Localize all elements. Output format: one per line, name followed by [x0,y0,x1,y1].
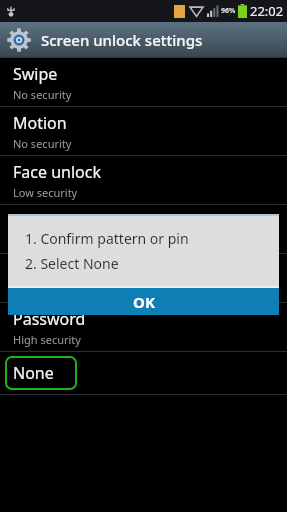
staticText: Face unlock [13,161,101,183]
staticText: Signature [13,210,86,232]
staticText: Password [13,308,86,330]
staticText: High security [13,332,81,347]
staticText: None [13,362,54,384]
staticText: No security [13,87,72,102]
staticText: Low security [13,234,78,249]
staticText: Screen unlock settings [41,30,203,50]
staticText: Low security [13,185,78,200]
staticText: 1. Confirm pattern or pin [25,229,189,248]
staticText: 22:02 [250,2,284,20]
staticText: Motion [13,112,67,134]
staticText: Swipe [13,63,58,85]
staticText: PIN [13,259,41,281]
button[interactable]: Signature [0,205,287,253]
button[interactable]: PIN [0,254,287,302]
staticText: Medium to high security [13,283,139,298]
staticText: OK [133,292,155,312]
button[interactable]: OK [8,288,279,315]
button[interactable]: Face unlock [0,156,287,204]
button[interactable]: Motion [0,107,287,155]
staticText: 96% [221,6,236,16]
button[interactable]: Swipe [0,58,287,106]
button[interactable]: None [0,352,287,394]
staticText: 2. Select None [25,254,119,273]
button[interactable]: Password [0,303,287,351]
staticText: No security [13,136,72,151]
button[interactable]: Screen unlock settings [0,22,287,58]
